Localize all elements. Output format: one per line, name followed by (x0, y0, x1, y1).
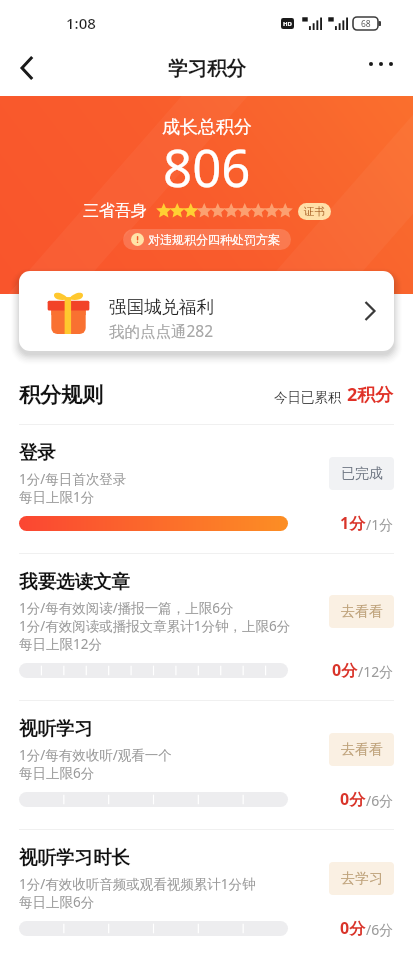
button[interactable]: 去看看 (329, 733, 394, 766)
staticText: 68 (361, 18, 371, 30)
staticText: 今日已累积 (274, 389, 342, 406)
staticText: 1:08 (66, 13, 96, 33)
staticText: 每日上限6分 (19, 764, 95, 782)
staticText: /1分 (366, 515, 394, 534)
button[interactable]: More options (359, 42, 403, 86)
staticText: 三省吾身 (83, 201, 147, 221)
staticText: 每日上限1分 (19, 488, 95, 506)
button[interactable]: 对违规积分四种处罚方案 (131, 232, 280, 247)
staticText: 1分 (340, 512, 366, 534)
staticText: /6分 (366, 791, 394, 810)
staticText: 2积分 (347, 382, 394, 407)
staticText: 我的点点通282 (109, 320, 214, 341)
staticText: /12分 (358, 662, 394, 681)
staticText: 强国城兑福利 (109, 296, 214, 318)
staticText: 视听学习 (19, 717, 93, 740)
button[interactable]: 证书 (304, 205, 325, 218)
staticText: 0分 (332, 659, 358, 681)
staticText: 证书 (304, 205, 325, 218)
staticText: 积分规则 (19, 382, 103, 408)
staticText: 去看看 (341, 741, 383, 759)
staticText: 1分/每有效阅读/播报一篇，上限6分 (19, 599, 234, 617)
staticText: 已完成 (341, 465, 383, 483)
staticText: 每日上限12分 (19, 635, 102, 653)
button[interactable]: 已完成 (329, 457, 394, 490)
staticText: 去看看 (341, 603, 383, 621)
button[interactable]: Back (0, 42, 52, 94)
staticText: 我要选读文章 (19, 570, 130, 593)
staticText: 登录 (19, 441, 56, 464)
staticText: 806 (163, 132, 251, 201)
staticText: /6分 (366, 920, 394, 939)
staticText: 成长总积分 (162, 116, 252, 139)
staticText: 0分 (340, 788, 366, 810)
button[interactable]: 去看看 (329, 595, 394, 628)
staticText: 对违规积分四种处罚方案 (148, 232, 280, 247)
staticText: 0分 (340, 917, 366, 939)
staticText: 视听学习时长 (19, 846, 130, 869)
button[interactable]: 强国城兑福利 (19, 271, 394, 351)
staticText: 1分/每日首次登录 (19, 470, 127, 488)
staticText: 学习积分 (168, 56, 246, 81)
staticText: 1分/每有效收听/观看一个 (19, 746, 172, 764)
button[interactable]: 去学习 (329, 862, 394, 895)
staticText: HD (283, 20, 292, 28)
staticText: 1分/有效阅读或播报文章累计1分钟，上限6分 (19, 617, 291, 635)
staticText: 每日上限6分 (19, 893, 95, 911)
staticText: 去学习 (341, 870, 383, 888)
staticText: 1分/有效收听音频或观看视频累计1分钟 (19, 875, 256, 893)
